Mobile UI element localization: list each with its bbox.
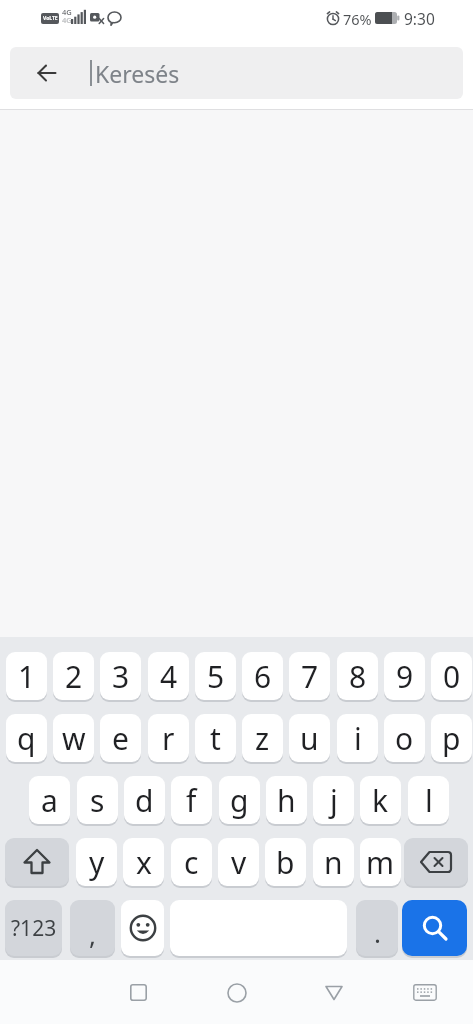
staticText: s bbox=[90, 780, 105, 821]
staticText: e bbox=[112, 718, 129, 759]
button[interactable] bbox=[408, 976, 441, 1009]
button[interactable]: u bbox=[289, 714, 330, 762]
button[interactable] bbox=[404, 838, 468, 886]
staticText: q bbox=[17, 718, 36, 759]
button[interactable]: a bbox=[29, 776, 70, 824]
staticText: 8 bbox=[349, 656, 367, 697]
staticText: h bbox=[277, 780, 296, 821]
staticText: 9:30 bbox=[404, 8, 435, 29]
staticText: VoLTE bbox=[43, 15, 58, 22]
staticText: 9 bbox=[396, 656, 414, 697]
staticText: x bbox=[136, 842, 152, 883]
staticText: 4 bbox=[160, 656, 178, 697]
button[interactable]: 9 bbox=[384, 652, 425, 700]
button[interactable]: 8 bbox=[337, 652, 378, 700]
button[interactable] bbox=[5, 838, 69, 886]
button[interactable]: 1 bbox=[6, 652, 47, 700]
staticText: , bbox=[89, 917, 96, 952]
button[interactable]: 5 bbox=[195, 652, 236, 700]
button[interactable] bbox=[402, 900, 467, 956]
staticText: 1 bbox=[18, 656, 36, 697]
staticText: 3 bbox=[112, 656, 130, 697]
button[interactable]: z bbox=[242, 714, 283, 762]
staticText: 2 bbox=[65, 656, 83, 697]
staticText: j bbox=[330, 780, 338, 821]
staticText: 6 bbox=[254, 656, 272, 697]
button[interactable]: p bbox=[431, 714, 472, 762]
staticText: 4G bbox=[62, 7, 72, 17]
staticText: . bbox=[374, 915, 381, 950]
staticText: i bbox=[354, 718, 362, 759]
staticText: p bbox=[442, 718, 461, 759]
staticText: a bbox=[41, 780, 58, 821]
button[interactable]: , bbox=[70, 900, 115, 956]
button[interactable]: b bbox=[265, 838, 306, 886]
button[interactable]: n bbox=[313, 838, 354, 886]
button[interactable]: y bbox=[76, 838, 117, 886]
button[interactable]: i bbox=[337, 714, 378, 762]
button[interactable] bbox=[122, 976, 155, 1009]
button[interactable]: d bbox=[124, 776, 165, 824]
staticText: v bbox=[231, 842, 247, 883]
button[interactable]: q bbox=[6, 714, 47, 762]
button[interactable]: h bbox=[266, 776, 307, 824]
button[interactable] bbox=[220, 976, 253, 1009]
button[interactable]: w bbox=[53, 714, 94, 762]
staticText: 4G bbox=[62, 15, 72, 25]
button[interactable]: k bbox=[360, 776, 401, 824]
staticText: c bbox=[184, 842, 199, 883]
staticText: 7 bbox=[301, 656, 319, 697]
button[interactable]: v bbox=[218, 838, 259, 886]
button[interactable]: 6 bbox=[242, 652, 283, 700]
button[interactable]: t bbox=[195, 714, 236, 762]
staticText: g bbox=[230, 780, 249, 821]
staticText: f bbox=[186, 780, 197, 821]
staticText: r bbox=[162, 718, 175, 759]
staticText: k bbox=[372, 780, 389, 821]
staticText: 76% bbox=[343, 9, 372, 29]
staticText: y bbox=[89, 842, 105, 883]
button[interactable]: 4 bbox=[148, 652, 189, 700]
button[interactable]: . bbox=[356, 900, 398, 956]
button[interactable]: o bbox=[384, 714, 425, 762]
button[interactable] bbox=[317, 976, 350, 1009]
staticText: Keresés bbox=[95, 58, 180, 89]
button[interactable]: 0 bbox=[431, 652, 472, 700]
staticText: u bbox=[300, 718, 319, 759]
button[interactable]: 2 bbox=[53, 652, 94, 700]
staticText: z bbox=[255, 718, 270, 759]
button[interactable]: f bbox=[171, 776, 212, 824]
staticText: b bbox=[276, 842, 295, 883]
button[interactable]: Keresés bbox=[10, 47, 463, 99]
button[interactable] bbox=[121, 900, 164, 956]
button[interactable]: r bbox=[148, 714, 189, 762]
staticText: n bbox=[324, 842, 343, 883]
staticText: w bbox=[62, 718, 86, 759]
button[interactable]: l bbox=[408, 776, 449, 824]
button[interactable]: g bbox=[219, 776, 260, 824]
staticText: 5 bbox=[207, 656, 225, 697]
button[interactable]: c bbox=[171, 838, 212, 886]
button[interactable]: e bbox=[100, 714, 141, 762]
staticText: m bbox=[366, 842, 395, 883]
staticText: l bbox=[425, 780, 433, 821]
button[interactable]: 3 bbox=[100, 652, 141, 700]
staticText: o bbox=[395, 718, 414, 759]
button[interactable]: 7 bbox=[289, 652, 330, 700]
staticText: ?123 bbox=[11, 914, 57, 943]
button[interactable]: j bbox=[313, 776, 354, 824]
button[interactable]: s bbox=[77, 776, 118, 824]
button[interactable]: m bbox=[360, 838, 401, 886]
button[interactable]: ?123 bbox=[5, 900, 62, 956]
staticText: 0 bbox=[443, 656, 461, 697]
staticText: d bbox=[135, 780, 154, 821]
staticText: t bbox=[210, 718, 221, 759]
button[interactable]: x bbox=[123, 838, 164, 886]
button[interactable] bbox=[37, 63, 57, 83]
